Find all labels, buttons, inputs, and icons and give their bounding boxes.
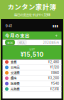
staticText: 光熱費 [11,87,20,91]
staticText: ¥7,310 [50,87,59,91]
staticText: 医療費 [11,81,20,86]
staticText: 支出 [7,40,13,45]
staticText: ¥1,120 [50,65,59,69]
staticText: 2024年6月 [43,40,59,45]
staticText: ¥860 [51,71,59,75]
staticText: 収入 [19,40,25,45]
staticText: カンタン家計簿 [7,2,56,11]
staticText: ¥3,200 [48,76,59,80]
staticText: 合計 [29,47,35,51]
staticText: ¥2,480 [48,60,59,64]
staticText: 9:41 [5,24,11,28]
staticText: 交通費 [11,70,20,75]
staticText: 今月の支出 [5,32,30,39]
staticText: ▮▮▮ [52,24,58,28]
staticText: ＋ [54,33,59,38]
staticText: ¥15,510 [20,51,43,58]
staticText: 趣味 [11,76,17,80]
staticText: ¥540 [51,82,59,86]
staticText: 毎日の支出をすばやく記録 [14,12,50,17]
staticText: 食費 [11,60,17,64]
staticText: 日用品 [11,65,20,70]
